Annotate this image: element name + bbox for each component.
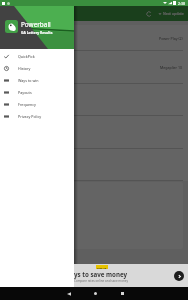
button[interactable]: Power Play (2)	[0, 25, 188, 51]
staticText: Ways to win	[18, 78, 39, 83]
staticText: History	[18, 66, 31, 71]
staticText: Next update	[163, 11, 184, 16]
button[interactable]: History	[0, 62, 74, 74]
button[interactable]: Megaplier 1X	[0, 51, 188, 84]
staticText: 2:38	[178, 1, 186, 6]
staticText: Compare rates online and save money	[74, 279, 129, 283]
button[interactable]: Back	[62, 287, 75, 300]
staticText: ys to save money	[74, 270, 128, 278]
button[interactable]: Open advertisement	[174, 271, 184, 281]
staticText: Megaplier 1X	[160, 65, 183, 70]
staticText: Payouts	[18, 90, 32, 95]
button[interactable]: Home	[89, 287, 102, 300]
staticText: Powerball	[21, 20, 51, 29]
staticText: Power Play (2)	[159, 36, 183, 41]
button[interactable]: Ways to win	[0, 74, 74, 86]
button[interactable]: Recent apps	[116, 287, 129, 300]
staticText: Privacy Policy	[18, 114, 42, 119]
button[interactable]: Frequency	[0, 98, 74, 110]
staticText: GA Lottery Results	[21, 30, 53, 35]
button[interactable]: Payouts	[0, 86, 74, 98]
button[interactable]: Refresh	[143, 8, 154, 19]
button[interactable]	[4, 182, 183, 249]
button[interactable]	[0, 116, 188, 149]
button[interactable]: Next update	[158, 11, 184, 16]
button[interactable]	[0, 84, 188, 116]
button[interactable]: QuickPick	[0, 50, 74, 62]
staticText: QuickPick	[18, 54, 35, 59]
staticText: Save Ad	[97, 266, 107, 269]
button[interactable]	[0, 149, 188, 181]
button[interactable]: Privacy Policy	[0, 110, 74, 122]
staticText: Frequency	[18, 102, 36, 107]
